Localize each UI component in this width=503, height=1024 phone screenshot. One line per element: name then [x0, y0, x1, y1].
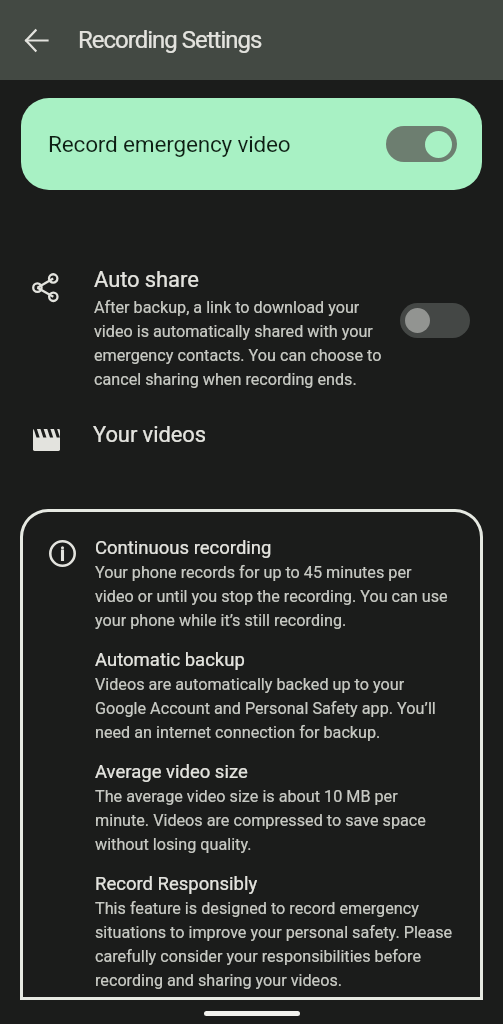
staticText: Your videos [93, 422, 206, 448]
staticText: Automatic backup [95, 647, 245, 671]
staticText: Auto share [94, 267, 199, 293]
button[interactable]: Auto share toggle [400, 303, 470, 338]
staticText: Record emergency video [48, 131, 386, 157]
staticText: Your phone records for up to 45 minutes … [95, 559, 453, 631]
button[interactable]: Auto share [0, 267, 503, 390]
staticText: Average video size [95, 759, 248, 783]
staticText: After backup, a link to download your vi… [94, 294, 386, 390]
staticText: Continuous recording [95, 535, 272, 559]
staticText: This feature is designed to record emerg… [95, 895, 453, 991]
button[interactable]: Record emergency video [21, 98, 482, 190]
button[interactable]: Your videos [0, 416, 503, 454]
button[interactable]: Back [12, 16, 60, 64]
staticText: Recording Settings [78, 26, 262, 54]
staticText: The average video size is about 10 MB pe… [95, 783, 453, 855]
button[interactable]: Record emergency video toggle [386, 126, 457, 162]
staticText: Record Responsibly [95, 871, 258, 895]
staticText: Videos are automatically backed up to yo… [95, 671, 453, 743]
